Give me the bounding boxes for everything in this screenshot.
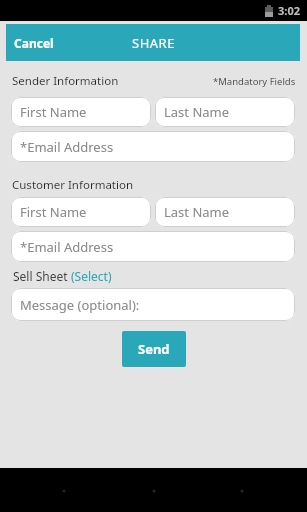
button[interactable]: First Name bbox=[11, 197, 151, 227]
staticText: Message (optional): bbox=[20, 296, 140, 314]
button[interactable]: *Email Address bbox=[11, 131, 295, 162]
staticText: First Name bbox=[20, 103, 87, 121]
staticText: Sell Sheet bbox=[13, 268, 71, 284]
staticText: Send bbox=[138, 340, 170, 358]
staticText: Last Name bbox=[164, 103, 230, 121]
staticText: *Email Address bbox=[20, 138, 114, 156]
button[interactable]: Cancel bbox=[14, 35, 54, 51]
staticText: *Email Address bbox=[20, 238, 114, 256]
staticText: 3:02 bbox=[278, 3, 300, 18]
staticText: Customer Information bbox=[12, 177, 134, 193]
button[interactable]: *Email Address bbox=[11, 231, 295, 262]
staticText: First Name bbox=[20, 203, 87, 221]
button[interactable]: Last Name bbox=[155, 97, 295, 127]
staticText: (Select) bbox=[71, 268, 112, 284]
staticText: SHARE bbox=[132, 34, 175, 52]
button[interactable]: Message (optional): bbox=[11, 288, 295, 321]
button[interactable]: (Select) bbox=[71, 268, 112, 284]
staticText: *Mandatory Fields bbox=[213, 75, 296, 88]
button[interactable]: Last Name bbox=[155, 197, 295, 227]
staticText: Cancel bbox=[14, 35, 54, 51]
staticText: Sender Information bbox=[12, 73, 119, 89]
button[interactable]: Send bbox=[122, 331, 186, 367]
staticText: Last Name bbox=[164, 203, 230, 221]
button[interactable]: First Name bbox=[11, 97, 151, 127]
